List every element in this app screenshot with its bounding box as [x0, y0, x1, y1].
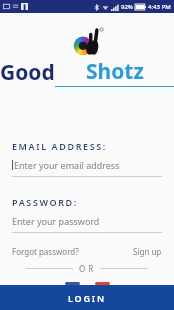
staticText: Good: [0, 58, 55, 87]
staticText: LOGIN: [68, 292, 106, 304]
staticText: PASSWORD:: [12, 196, 78, 208]
staticText: Sign up: [133, 246, 162, 257]
button[interactable]: Sign in with Facebook: [65, 282, 80, 285]
staticText: Enter your password: [12, 215, 100, 227]
staticText: Shotz: [86, 57, 144, 86]
button[interactable]: Forgot password?: [12, 246, 79, 257]
staticText: 4:43 PM: [148, 3, 171, 11]
button[interactable]: LOGIN: [0, 285, 174, 310]
staticText: Enter your email address: [14, 159, 120, 171]
staticText: O R: [79, 263, 94, 274]
staticText: 92%: [121, 3, 133, 11]
staticText: EMAIL ADDRESS:: [12, 140, 107, 152]
button[interactable]: Sign up: [133, 246, 162, 257]
button[interactable]: Sign in with Google: [95, 282, 110, 285]
staticText: Forgot password?: [12, 246, 79, 257]
